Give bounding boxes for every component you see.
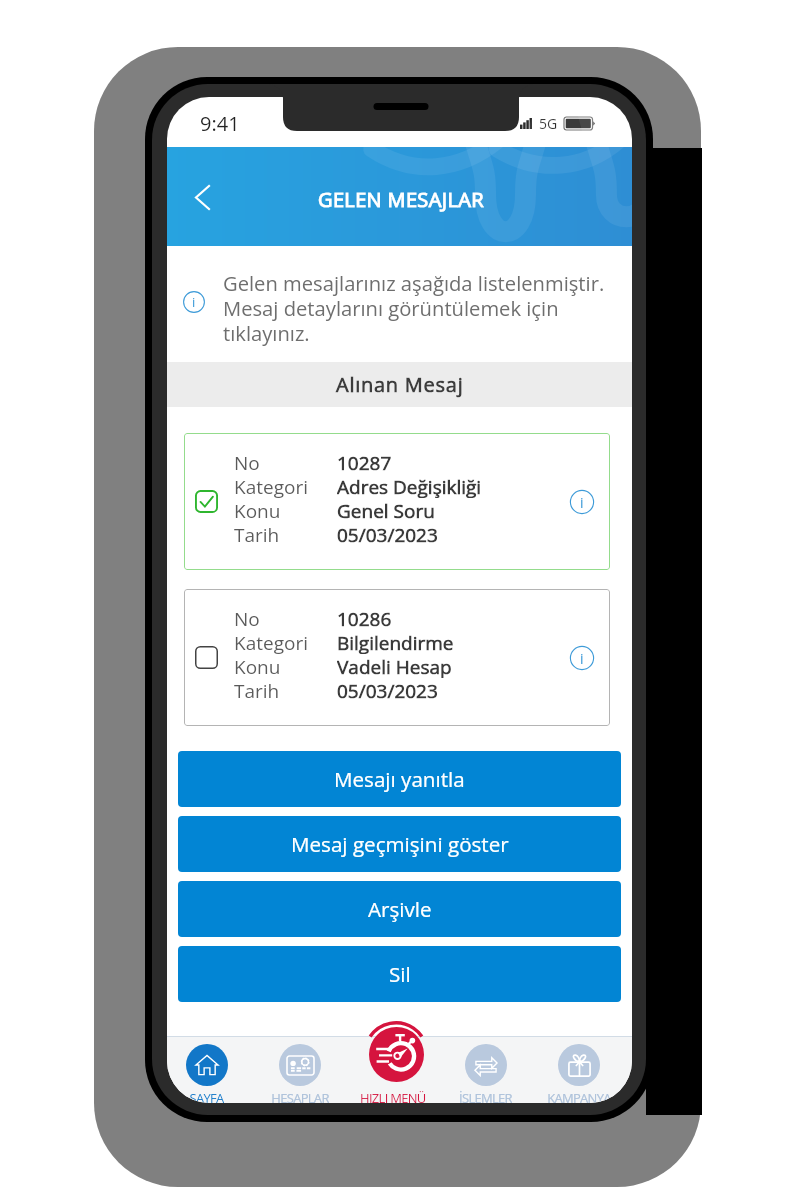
staticText: HESAPLAR — [271, 1089, 329, 1103]
staticText: i — [192, 293, 196, 311]
staticText: Alınan Mesaj — [336, 371, 464, 398]
button[interactable]: Mesaj geçmişini göster — [178, 816, 621, 872]
staticText: Arşivle — [368, 895, 432, 923]
button[interactable]: Message details — [569, 489, 595, 515]
staticText: Mesajı yanıtla — [334, 765, 465, 793]
staticText: Konu — [234, 654, 337, 678]
staticText: 05/03/2023 — [337, 678, 438, 702]
button[interactable]: No — [184, 589, 610, 726]
staticText: i — [580, 649, 584, 668]
staticText: Kategori — [234, 630, 337, 654]
staticText: No — [234, 450, 337, 474]
button[interactable]: Arşivle — [178, 881, 621, 937]
button[interactable]: No — [184, 433, 610, 570]
button[interactable]: Message details — [569, 645, 595, 671]
staticText: Tarih — [234, 678, 337, 702]
staticText: 9:41 — [200, 110, 240, 137]
staticText: GELEN MESAJLAR — [318, 186, 484, 213]
staticText: Gelen mesajlarınız aşağıda listelenmişti… — [223, 269, 613, 347]
staticText: No — [234, 606, 337, 630]
staticText: Vadeli Hesap — [337, 654, 452, 678]
staticText: 10287 — [337, 450, 392, 474]
button[interactable]: Hızlı Menü — [360, 1018, 432, 1090]
staticText: i — [580, 493, 584, 512]
button[interactable]: İŞLEMLER — [439, 1036, 532, 1103]
staticText: 05/03/2023 — [337, 522, 438, 546]
button[interactable]: Mesajı yanıtla — [178, 751, 621, 807]
staticText: 5G — [539, 114, 558, 133]
staticText: Mesaj geçmişini göster — [291, 830, 509, 858]
staticText: 10286 — [337, 606, 392, 630]
staticText: HIZLI MENÜ — [360, 1089, 426, 1103]
staticText: Konu — [234, 498, 337, 522]
staticText: Kategori — [234, 474, 337, 498]
staticText: Tarih — [234, 522, 337, 546]
staticText: İŞLEMLER — [459, 1089, 512, 1103]
button[interactable]: HESAPLAR — [253, 1036, 346, 1103]
button[interactable]: KAMPANYA — [532, 1036, 625, 1103]
staticText: Bilgilendirme — [337, 630, 454, 654]
staticText: SAYFA — [189, 1089, 224, 1103]
button[interactable]: Back — [179, 174, 225, 220]
staticText: KAMPANYA — [547, 1089, 611, 1103]
staticText: Genel Soru — [337, 498, 435, 522]
staticText: Adres Değişikliği — [337, 474, 482, 498]
button[interactable]: SAYFA — [167, 1036, 253, 1103]
button[interactable]: Sil — [178, 946, 621, 1002]
staticText: Sil — [389, 960, 411, 988]
